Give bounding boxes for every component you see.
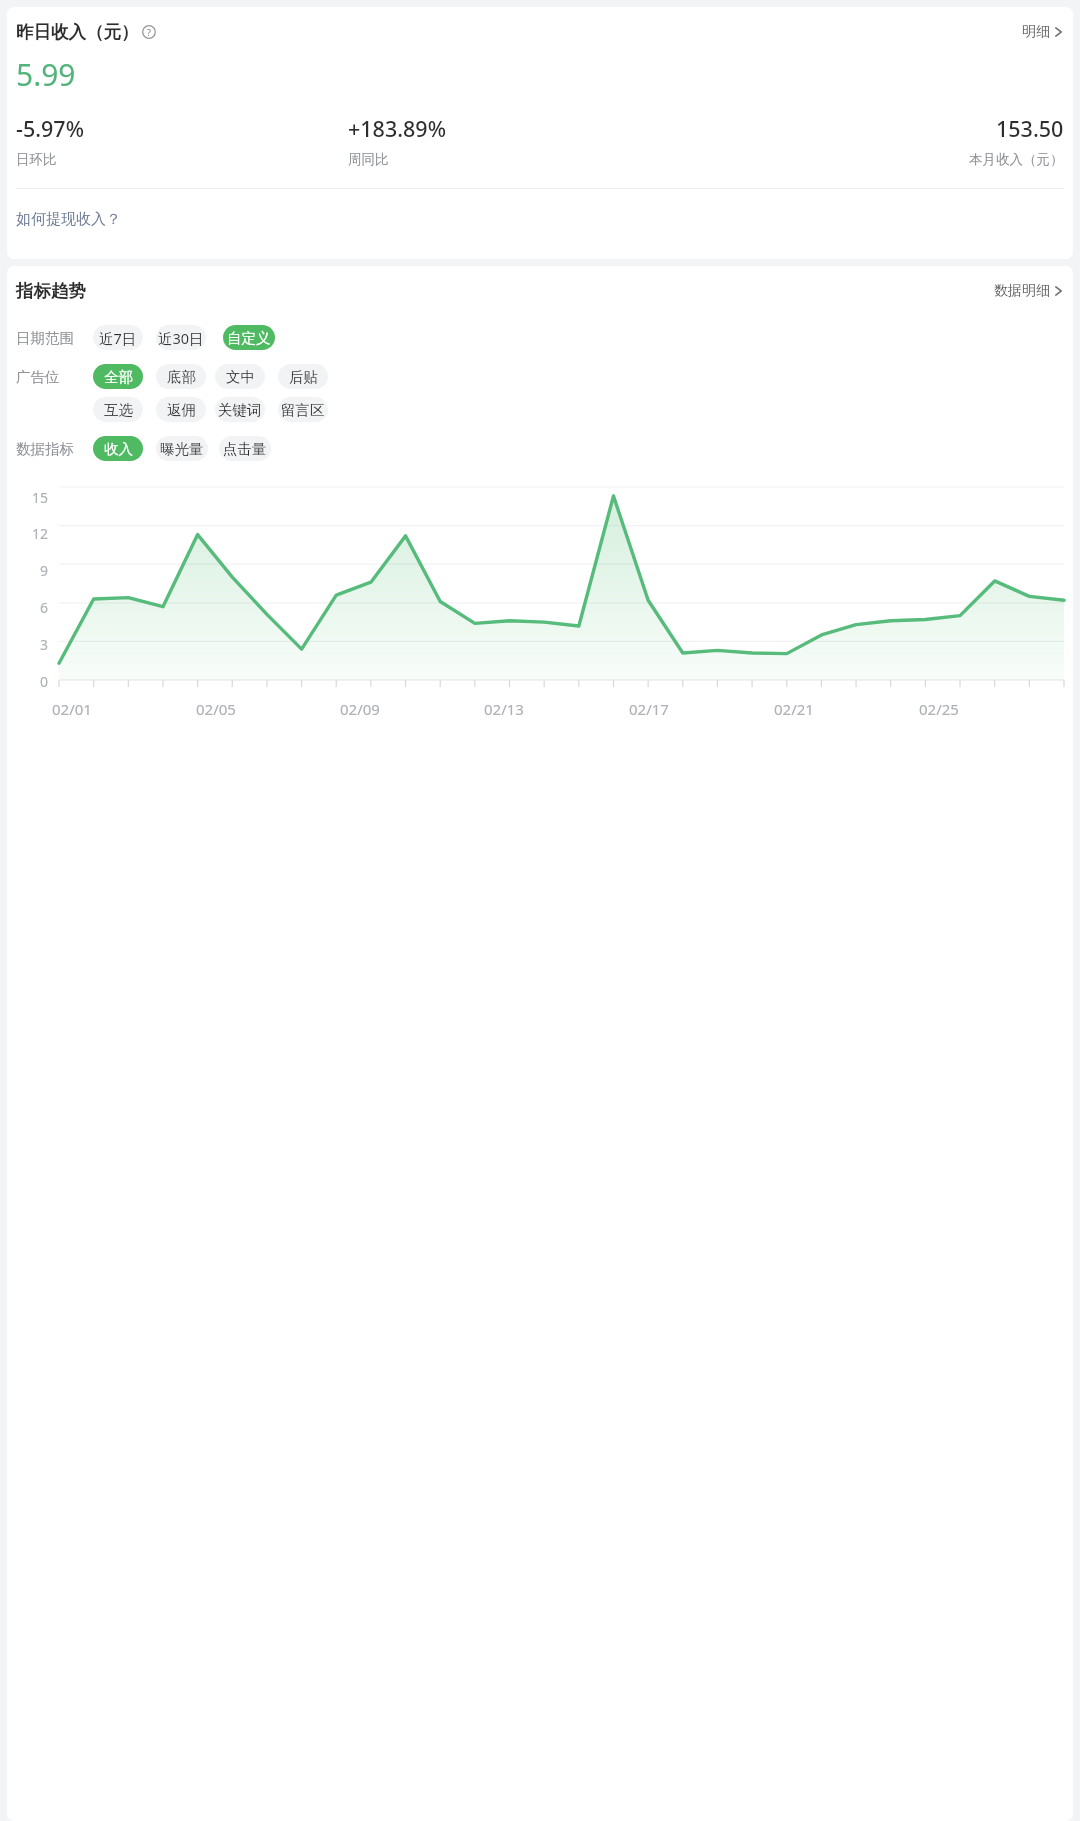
button[interactable]: 后贴	[278, 364, 328, 389]
staticText: 互选	[104, 401, 133, 419]
button[interactable]: 近7日	[93, 325, 143, 350]
staticText: 如何提现收入？	[16, 210, 121, 229]
staticText: 返佣	[167, 401, 196, 419]
staticText: 02/01	[52, 699, 92, 719]
button[interactable]: 帮助说明	[142, 25, 156, 39]
staticText: 02/25	[919, 699, 959, 719]
staticText: 日环比	[16, 151, 57, 168]
staticText: 数据明细	[994, 282, 1050, 300]
staticText: 本月收入（元）	[969, 151, 1064, 168]
button[interactable]: 收入	[93, 436, 143, 461]
button[interactable]: 文中	[215, 364, 265, 389]
staticText: 后贴	[289, 368, 318, 386]
staticText: 9	[40, 561, 49, 580]
button[interactable]: 曝光量	[156, 436, 208, 461]
button[interactable]: 点击量	[219, 436, 271, 461]
staticText: 02/13	[484, 699, 524, 719]
staticText: +183.89%	[348, 114, 446, 143]
button[interactable]: 返佣	[156, 397, 206, 422]
staticText: 全部	[104, 368, 133, 386]
staticText: 留言区	[281, 401, 325, 419]
staticText: 数据指标	[16, 440, 74, 458]
staticText: 近7日	[99, 328, 137, 348]
staticText: 指标趋势	[16, 280, 86, 302]
staticText: 底部	[167, 368, 196, 386]
button[interactable]: 留言区	[278, 397, 328, 422]
staticText: 收入	[104, 440, 133, 458]
button[interactable]: 数据明细	[992, 280, 1064, 302]
staticText: 文中	[226, 368, 255, 386]
button[interactable]: 明细	[1020, 21, 1064, 43]
button[interactable]: 全部	[93, 364, 143, 389]
button[interactable]: 如何提现收入？	[16, 210, 121, 229]
staticText: 12	[32, 524, 49, 543]
staticText: 153.50	[996, 114, 1064, 143]
staticText: 广告位	[16, 368, 60, 386]
staticText: 02/17	[629, 699, 669, 719]
button[interactable]: 近30日	[156, 325, 206, 350]
staticText: 关键词	[218, 401, 262, 419]
staticText: 02/21	[774, 699, 814, 719]
staticText: -5.97%	[16, 114, 84, 143]
staticText: 02/09	[340, 699, 380, 719]
staticText: 0	[40, 672, 49, 691]
staticText: 02/05	[196, 699, 236, 719]
staticText: ?	[147, 26, 151, 38]
staticText: 周同比	[348, 151, 389, 168]
staticText: 3	[40, 635, 49, 654]
staticText: 昨日收入（元）	[16, 21, 139, 43]
button[interactable]: 互选	[93, 397, 143, 422]
staticText: 6	[40, 598, 49, 617]
button[interactable]: 自定义	[223, 325, 275, 350]
staticText: 曝光量	[160, 440, 204, 458]
staticText: 明细	[1022, 23, 1050, 41]
staticText: 自定义	[227, 329, 271, 347]
button[interactable]: 底部	[156, 364, 206, 389]
staticText: 近30日	[158, 328, 204, 348]
staticText: 日期范围	[16, 329, 74, 347]
button[interactable]: 关键词	[215, 397, 265, 422]
staticText: 5.99	[16, 54, 76, 95]
staticText: 点击量	[223, 440, 267, 458]
staticText: 15	[32, 488, 49, 507]
